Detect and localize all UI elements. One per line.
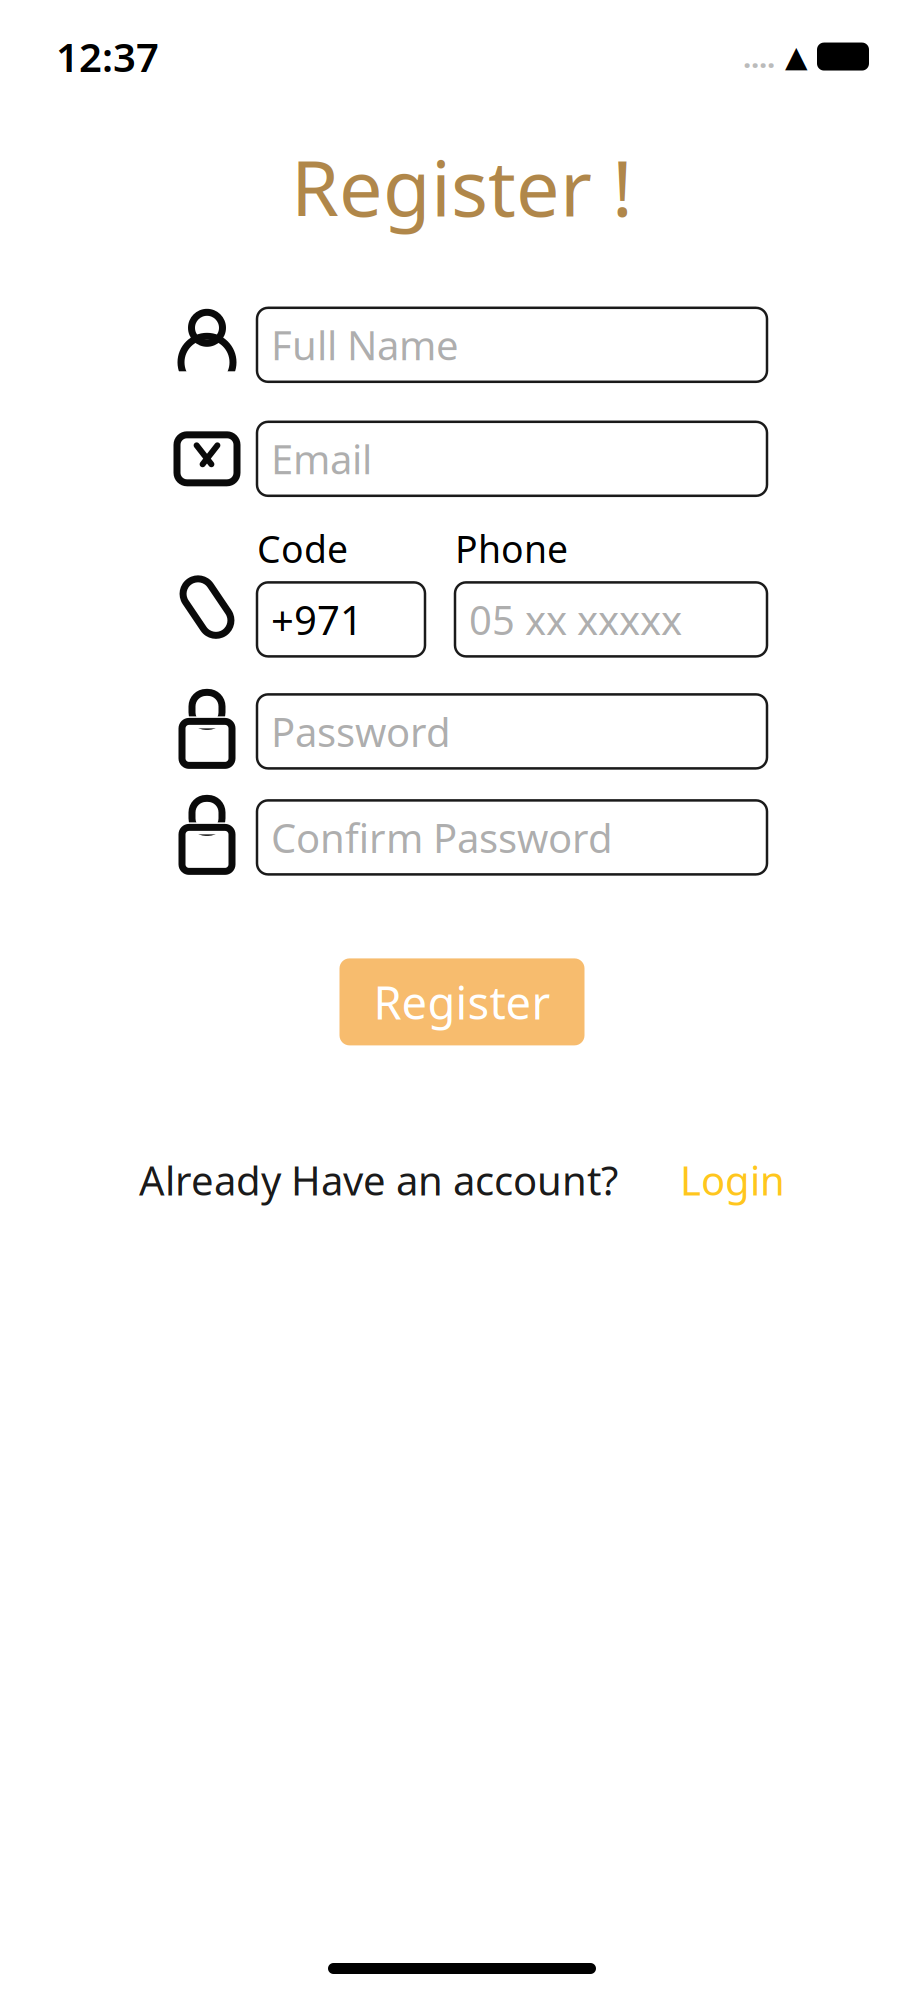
button[interactable]: Email	[257, 422, 767, 496]
staticText: Login	[680, 1153, 785, 1206]
staticText: Email	[271, 432, 372, 485]
button[interactable]: Register	[339, 958, 584, 1045]
staticText: Password	[271, 705, 451, 758]
staticText: Register !	[291, 135, 633, 238]
button[interactable]: 05 xx xxxxx	[455, 582, 767, 656]
staticText: Phone	[455, 524, 568, 573]
button[interactable]: Password	[257, 694, 767, 768]
staticText: Full Name	[271, 318, 459, 371]
staticText: Already Have an account?	[139, 1153, 618, 1206]
button[interactable]: Login	[680, 1153, 785, 1206]
button[interactable]: Confirm Password	[257, 800, 767, 874]
staticText: Code	[257, 524, 348, 573]
staticText: ▲	[785, 40, 808, 73]
staticText: 05 xx xxxxx	[469, 593, 682, 646]
staticText: Register	[373, 972, 550, 1032]
staticText: 12:37	[56, 30, 159, 83]
staticText: Confirm Password	[271, 811, 613, 864]
staticText: +971	[271, 593, 363, 646]
button[interactable]: +971	[257, 582, 425, 656]
button[interactable]: Full Name	[257, 308, 767, 382]
staticText: ....	[743, 37, 775, 76]
